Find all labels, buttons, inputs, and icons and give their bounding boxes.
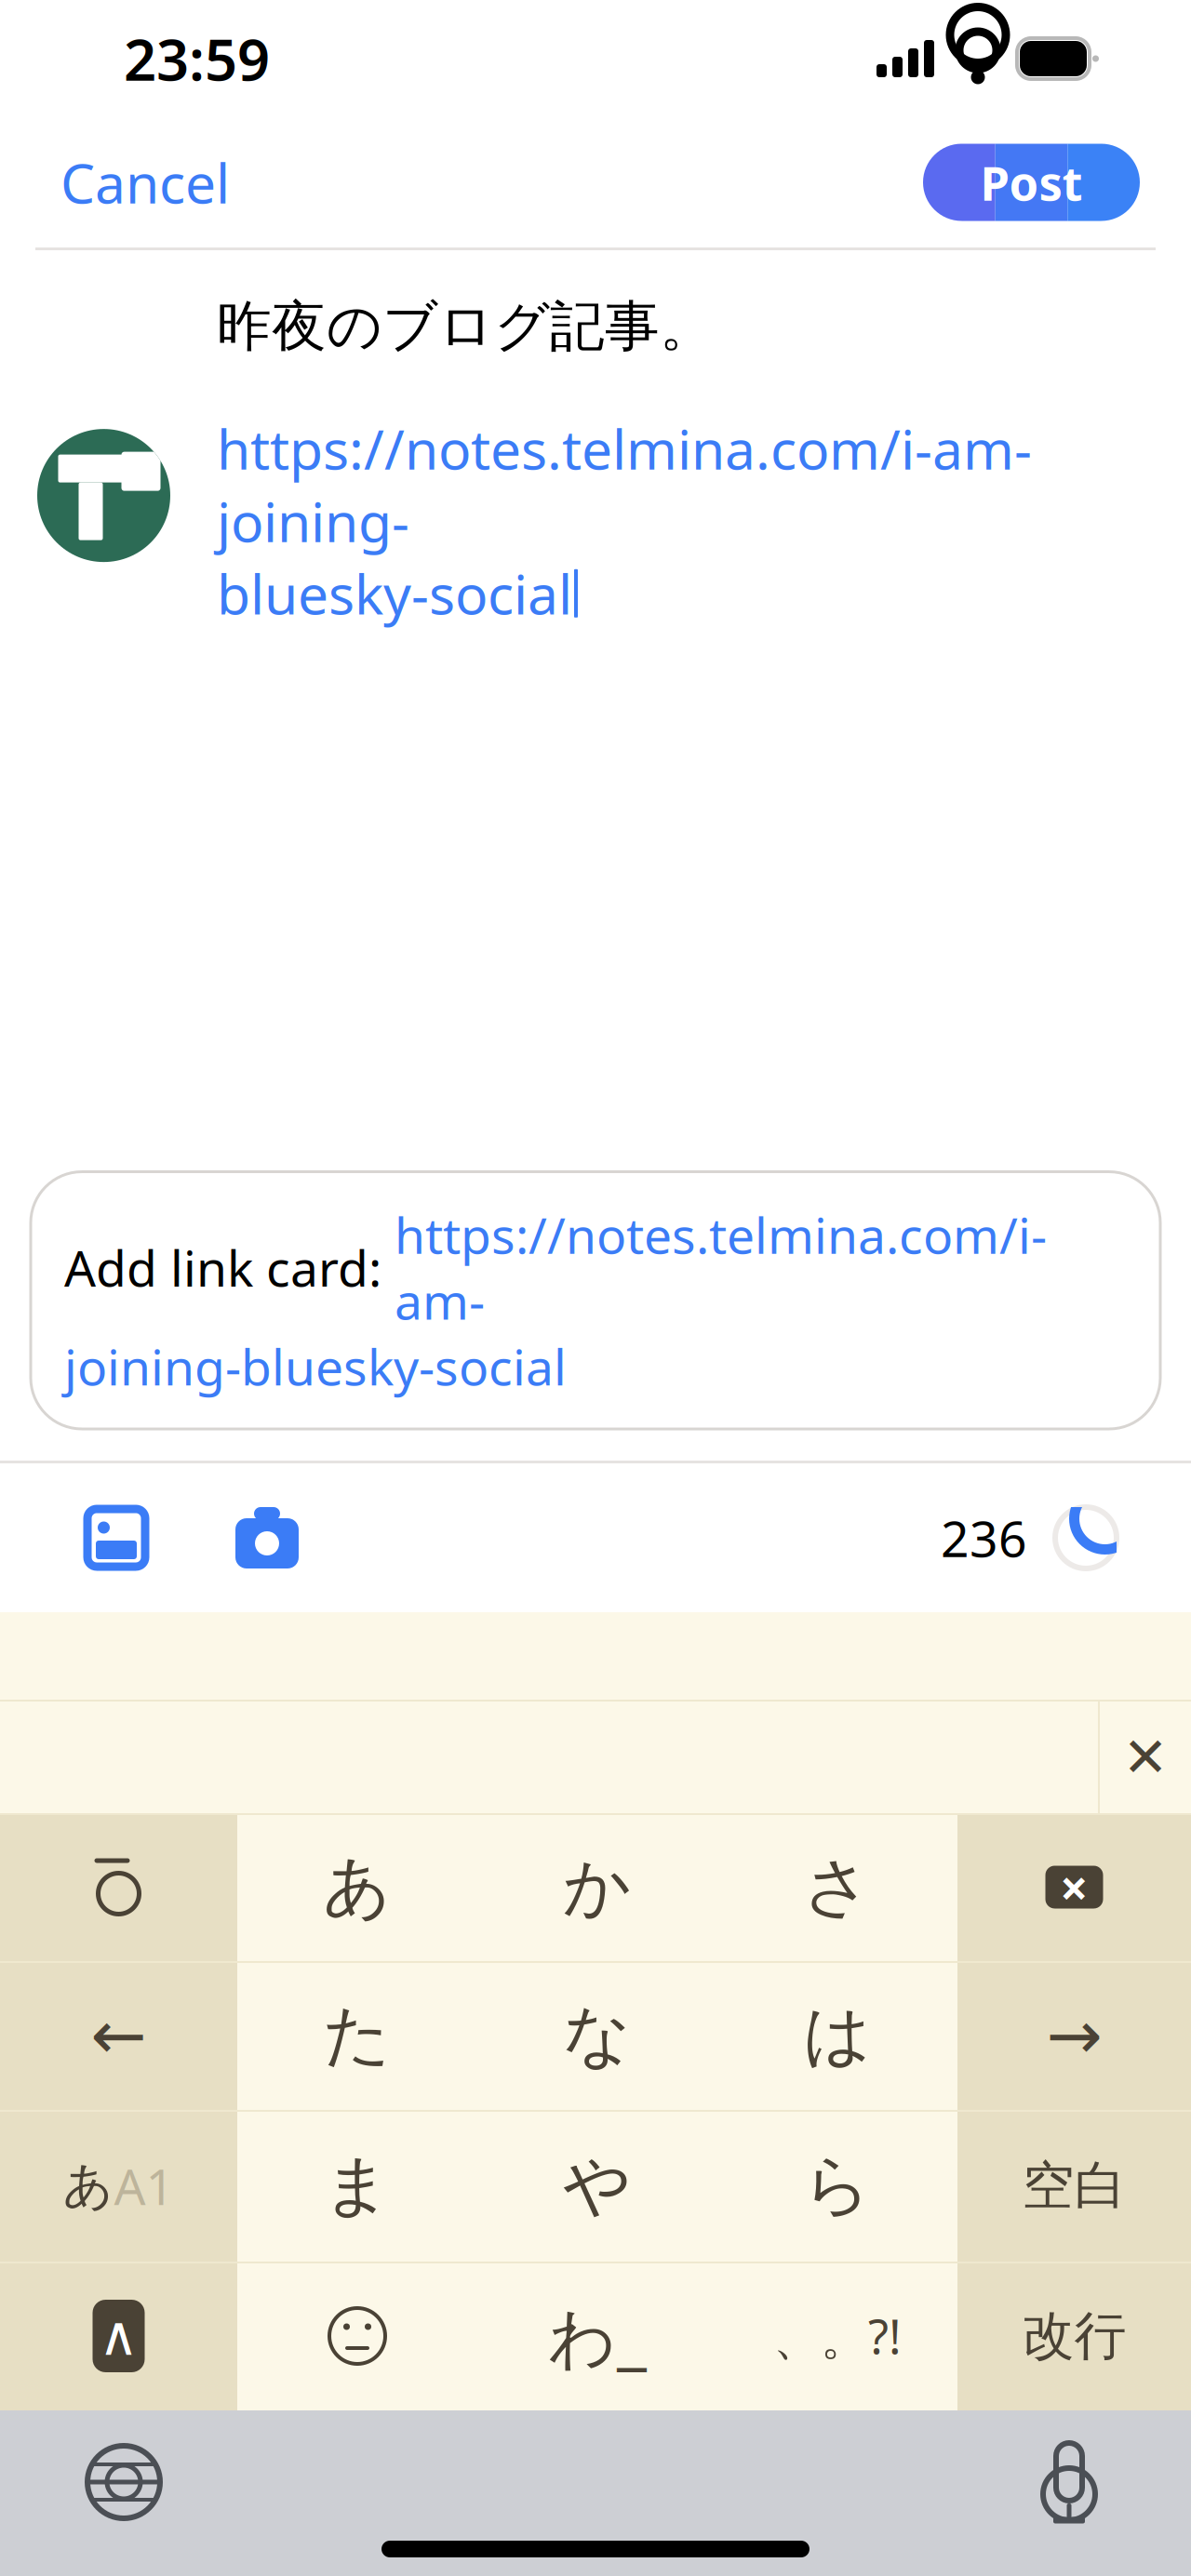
button[interactable]: 、。?! [717, 2262, 957, 2410]
staticText: A1 [114, 2153, 174, 2219]
staticText: は [803, 1994, 872, 2077]
button[interactable]: さ [717, 1813, 957, 1961]
staticText: Add link card: [64, 1234, 395, 1300]
staticText: や [563, 2145, 632, 2227]
staticText: 昨夜のブログ記事。 [217, 293, 715, 360]
button[interactable]: は [717, 1961, 957, 2110]
button[interactable]: ← [0, 1961, 237, 2110]
button[interactable]: あ [237, 1813, 477, 1961]
button[interactable]: → [957, 1961, 1191, 2110]
button[interactable]: ま [237, 2110, 477, 2262]
button[interactable]: Add photo [73, 1494, 160, 1582]
staticText: joining-bluesky-social [64, 1333, 567, 1399]
button[interactable]: ∧ [0, 2262, 237, 2410]
button[interactable]: ら [717, 2110, 957, 2262]
staticText: bluesky-social [217, 557, 572, 630]
button[interactable]: Close candidates [1100, 1702, 1191, 1813]
staticText: https://notes.telmina.com/i-am-joining- [217, 412, 1032, 557]
button[interactable]: や [477, 2110, 717, 2262]
staticText: な [563, 1994, 632, 2077]
button[interactable]: Add link card: [0, 1172, 1191, 1429]
staticText: ← [91, 1997, 147, 2073]
staticText: あ [63, 2155, 114, 2216]
button[interactable] [237, 2262, 477, 2410]
button[interactable]: Camera [223, 1494, 311, 1582]
staticText: ✕ [1123, 1726, 1168, 1788]
staticText: ま [323, 2145, 392, 2227]
button[interactable]: あ [0, 2110, 237, 2262]
button[interactable]: わ_ [477, 2262, 717, 2410]
button[interactable]: × [957, 1813, 1191, 1961]
staticText: た [323, 1994, 392, 2077]
button[interactable]: 改行 [957, 2262, 1191, 2410]
button[interactable]: な [477, 1961, 717, 2110]
staticText: さ [803, 1846, 872, 1928]
button[interactable]: Switch keyboard [76, 2435, 171, 2529]
staticText: Post [980, 151, 1083, 214]
staticText: 空白 [1022, 2154, 1126, 2218]
staticText: 改行 [1022, 2304, 1126, 2368]
button[interactable] [0, 1813, 237, 1961]
staticText: 236 [941, 1505, 1027, 1571]
button[interactable]: 空白 [957, 2110, 1191, 2262]
staticText: Cancel [60, 146, 230, 219]
button[interactable]: Dictation [1027, 2431, 1111, 2533]
staticText: 23:59 [124, 21, 270, 96]
button[interactable]: か [477, 1813, 717, 1961]
staticText: ∧ [99, 2305, 139, 2367]
staticText: か [563, 1846, 632, 1928]
staticText: 、。?! [773, 2305, 902, 2367]
staticText: あ [323, 1846, 392, 1928]
button[interactable]: Post [923, 144, 1140, 221]
button[interactable]: た [237, 1961, 477, 2110]
staticText: × [1060, 1854, 1089, 1920]
staticText: → [1046, 1997, 1102, 2073]
button[interactable]: Cancel [53, 133, 237, 232]
staticText: https://notes.telmina.com/i-am- [395, 1201, 1047, 1333]
staticText: わ_ [548, 2292, 647, 2380]
staticText: ら [803, 2145, 872, 2227]
